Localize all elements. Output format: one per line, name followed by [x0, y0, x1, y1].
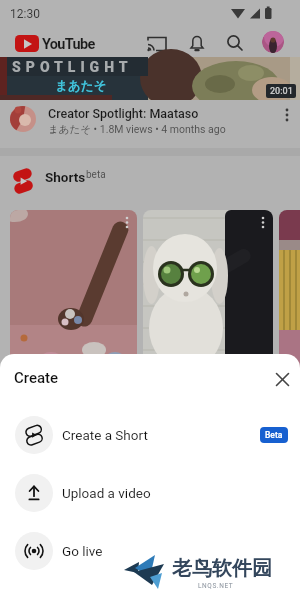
staticText: Create — [14, 369, 59, 387]
button[interactable] — [143, 210, 273, 370]
button[interactable]: Creator Spotlight: Maataso — [0, 100, 300, 148]
staticText: Upload a video — [62, 485, 151, 501]
button[interactable] — [15, 35, 89, 53]
button[interactable]: Upload a video — [0, 464, 300, 522]
button[interactable] — [268, 365, 296, 393]
staticText: Creator Spotlight: Maataso — [48, 106, 199, 121]
staticText: まあたそ • 1.8M views • 4 months ago — [48, 123, 226, 136]
staticText: beta — [86, 169, 106, 181]
staticText: Go live — [62, 543, 103, 559]
staticText: 12:30 — [10, 7, 40, 21]
staticText: SPOTLIGHT — [12, 59, 133, 75]
button[interactable]: Create a Short — [0, 406, 300, 464]
button[interactable] — [144, 30, 170, 56]
button[interactable] — [279, 210, 300, 370]
staticText: Shorts — [45, 169, 86, 185]
button[interactable] — [222, 30, 248, 56]
staticText: YouTube — [42, 36, 95, 53]
staticText: 老鸟软件园 — [172, 556, 272, 581]
button[interactable] — [262, 31, 284, 53]
button[interactable] — [10, 210, 137, 370]
staticText: まあたそ — [55, 78, 107, 94]
button[interactable] — [184, 30, 210, 56]
staticText: LNQS.NET — [198, 582, 234, 590]
staticText: Create a Short — [62, 427, 148, 443]
staticText: Beta — [265, 430, 283, 440]
button[interactable]: Go live — [0, 522, 300, 580]
button[interactable]: SPOTLIGHT — [0, 57, 300, 100]
staticText: 20:01 — [270, 86, 293, 97]
